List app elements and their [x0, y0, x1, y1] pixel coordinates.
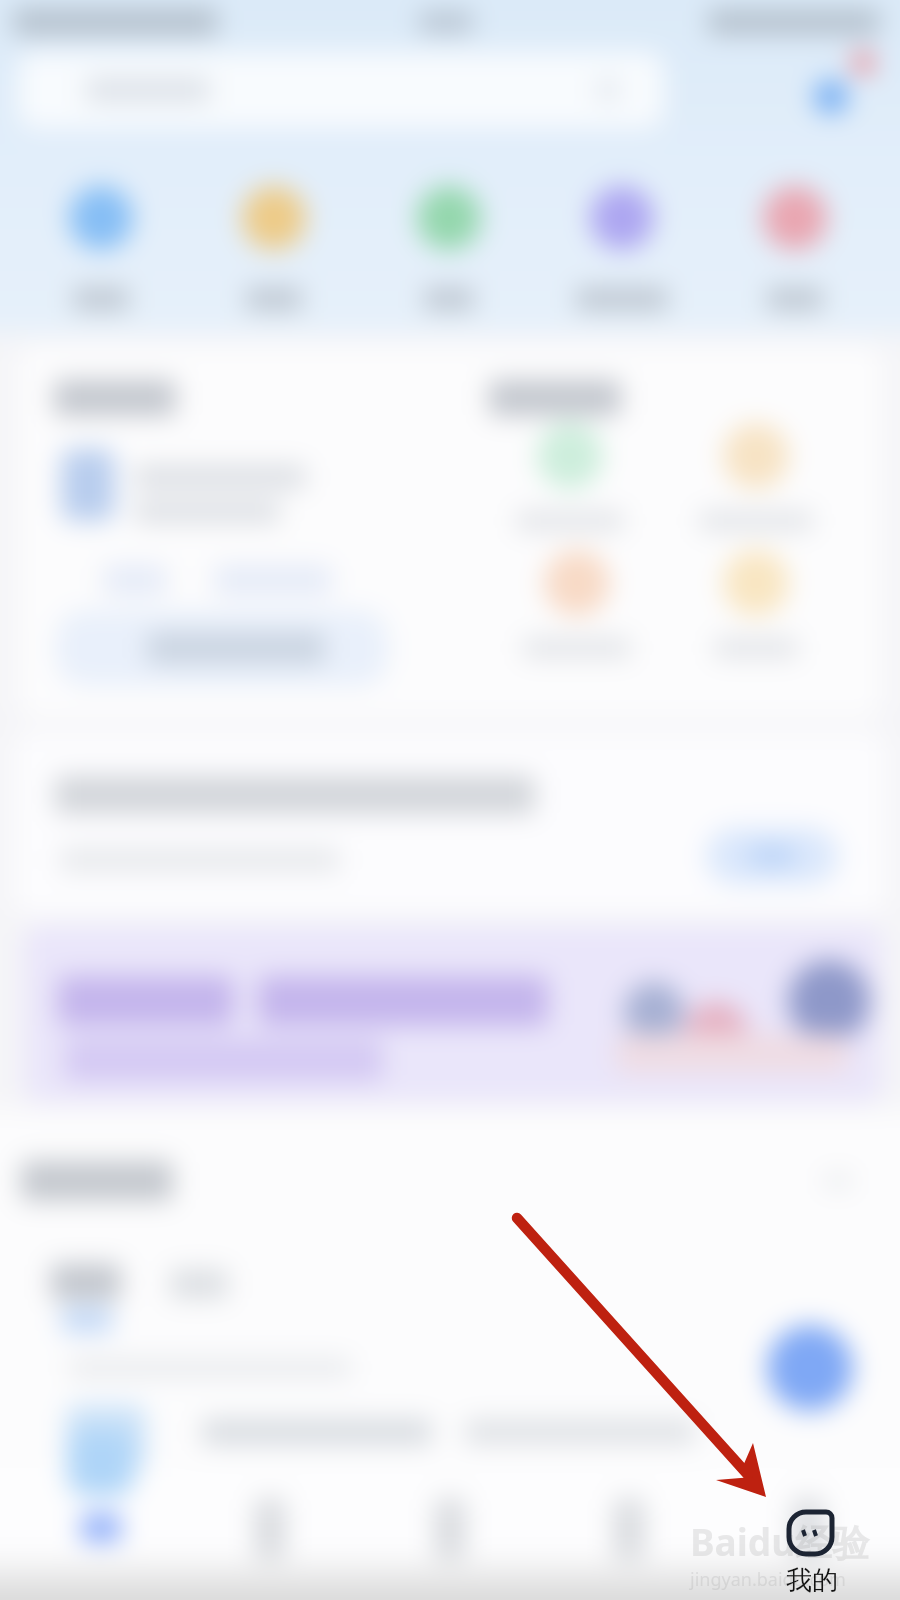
button[interactable]: [696, 423, 816, 533]
staticText: jingyan.baidu.com: [690, 1567, 846, 1592]
button[interactable]: [706, 828, 838, 884]
button[interactable]: Search: [18, 52, 664, 128]
button[interactable]: Transit: [389, 174, 509, 320]
button[interactable]: [18, 345, 882, 718]
button[interactable]: [517, 550, 637, 660]
staticText: Baidu经验: [690, 1516, 870, 1567]
button[interactable]: Shop: [549, 1468, 709, 1600]
button[interactable]: Discover: [190, 1468, 350, 1600]
button[interactable]: [162, 1260, 238, 1310]
button[interactable]: Home: [21, 1468, 181, 1600]
button[interactable]: Mine: [728, 1468, 888, 1600]
button[interactable]: [510, 423, 630, 533]
button[interactable]: [14, 732, 886, 914]
button[interactable]: [24, 926, 882, 1102]
button[interactable]: Create post: [767, 1325, 853, 1411]
button[interactable]: Message: [370, 1468, 530, 1600]
button[interactable]: Profile: [792, 60, 862, 128]
button[interactable]: More: [735, 174, 855, 320]
button[interactable]: Pay: [214, 174, 334, 320]
staticText: 我的: [786, 1564, 838, 1597]
button[interactable]: Customer service: [562, 174, 682, 320]
button[interactable]: [48, 1260, 124, 1340]
button[interactable]: [0, 1395, 900, 1515]
button[interactable]: Scan: [41, 174, 161, 320]
button[interactable]: [696, 550, 816, 660]
